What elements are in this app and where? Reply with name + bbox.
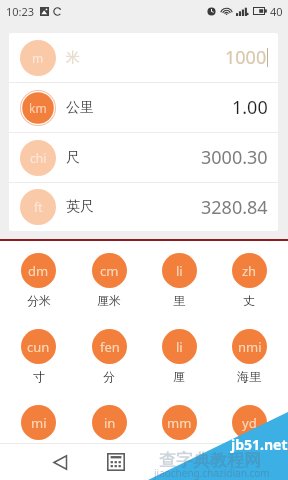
staticText: li (176, 338, 183, 356)
staticText: 公里 (66, 99, 94, 117)
button[interactable]: nmi (214, 329, 284, 384)
staticText: 10:23 (6, 4, 35, 19)
button[interactable]: dm (3, 253, 74, 308)
button[interactable]: mm (144, 405, 214, 443)
staticText: jb51.net (231, 435, 288, 454)
button[interactable]: chi (9, 133, 278, 182)
staticText: mi (31, 414, 47, 432)
staticText: 英尺 (66, 198, 94, 216)
staticText: yd (242, 414, 257, 432)
button[interactable]: m (9, 33, 278, 82)
button[interactable]: cm (74, 253, 144, 308)
staticText: jiaocheng.chazidian.com (154, 466, 270, 480)
button[interactable]: zh (214, 253, 284, 308)
staticText: 3000.30 (201, 145, 268, 170)
staticText: cun (27, 338, 50, 356)
staticText: nmi (238, 338, 262, 356)
staticText: ft (34, 199, 43, 215)
staticText: 寸 (33, 369, 45, 384)
button[interactable]: cun (3, 329, 74, 384)
staticText: 厘米 (97, 293, 121, 308)
staticText: 厘 (173, 369, 185, 384)
staticText: mm (167, 414, 192, 432)
staticText: 米 (66, 49, 80, 67)
button[interactable]: li (144, 329, 214, 384)
button[interactable]: li (144, 253, 214, 308)
button[interactable]: ft (9, 183, 278, 231)
button[interactable]: in (74, 405, 144, 443)
staticText: 海里 (237, 369, 261, 384)
staticText: 里 (173, 293, 185, 308)
button[interactable]: km (9, 83, 278, 132)
staticText: 查字典教程网 (159, 450, 261, 471)
staticText: 1.00 (232, 95, 268, 120)
staticText: 尺 (66, 149, 80, 167)
button[interactable]: yd (214, 405, 284, 443)
button[interactable]: Back (46, 448, 74, 476)
staticText: fen (100, 338, 120, 356)
staticText: li (176, 262, 183, 280)
staticText: chi (30, 150, 47, 166)
button[interactable]: mi (3, 405, 74, 443)
staticText: km (29, 100, 47, 116)
staticText: in (104, 414, 116, 432)
staticText: 3280.84 (201, 195, 268, 220)
staticText: zh (242, 262, 257, 280)
button[interactable]: Calculator (102, 448, 130, 476)
staticText: 分 (103, 369, 115, 384)
staticText: dm (28, 262, 49, 280)
staticText: m (32, 50, 44, 66)
button[interactable]: fen (74, 329, 144, 384)
staticText: 分米 (27, 293, 51, 308)
staticText: 40 (270, 4, 283, 19)
staticText: 1000 (225, 45, 267, 70)
staticText: cm (100, 262, 119, 280)
staticText: 丈 (243, 293, 255, 308)
